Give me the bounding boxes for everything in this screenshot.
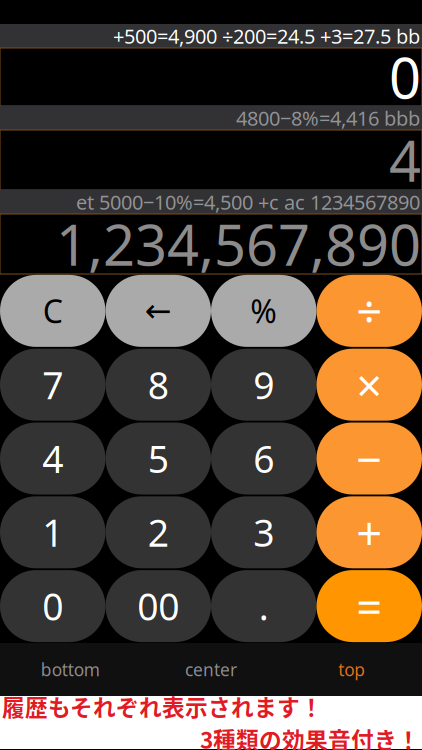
staticText: top bbox=[338, 658, 365, 681]
staticText: 0 bbox=[42, 581, 63, 631]
button[interactable]: 3 bbox=[211, 495, 316, 569]
button[interactable]: − bbox=[316, 422, 422, 495]
button[interactable]: ← bbox=[105, 274, 211, 348]
button[interactable]: % bbox=[211, 274, 316, 348]
button[interactable]: . bbox=[211, 569, 316, 643]
staticText: × bbox=[356, 354, 382, 415]
button[interactable]: 2 bbox=[105, 495, 211, 569]
staticText: 0 bbox=[389, 39, 421, 115]
staticText: bottom bbox=[41, 658, 100, 681]
staticText: = bbox=[356, 575, 382, 637]
staticText: 3 bbox=[253, 507, 274, 558]
staticText: 1 bbox=[42, 507, 63, 558]
staticText: 9 bbox=[253, 359, 274, 410]
button[interactable]: = bbox=[316, 569, 422, 643]
staticText: 8 bbox=[148, 359, 169, 410]
staticText: 履歴もそれぞれ表示されます！ bbox=[2, 690, 323, 722]
button[interactable]: top bbox=[281, 643, 422, 696]
button[interactable]: 0 bbox=[0, 569, 105, 643]
button[interactable]: ÷ bbox=[316, 274, 422, 348]
staticText: − bbox=[356, 428, 382, 489]
button[interactable]: 1 bbox=[0, 495, 105, 569]
button[interactable]: 7 bbox=[0, 348, 105, 422]
button[interactable]: 9 bbox=[211, 348, 316, 422]
staticText: 3種類の効果音付き！ bbox=[200, 722, 420, 750]
staticText: 6 bbox=[253, 433, 274, 484]
button[interactable]: 8 bbox=[105, 348, 211, 422]
button[interactable]: 5 bbox=[105, 422, 211, 495]
staticText: ← bbox=[145, 292, 172, 329]
button[interactable]: 6 bbox=[211, 422, 316, 495]
staticText: 4 bbox=[42, 433, 63, 484]
staticText: . bbox=[259, 581, 269, 631]
staticText: 00 bbox=[137, 581, 179, 631]
staticText: 7 bbox=[42, 359, 63, 410]
staticText: center bbox=[185, 658, 237, 681]
button[interactable]: bottom bbox=[0, 643, 141, 696]
staticText: + bbox=[356, 501, 382, 563]
button[interactable]: + bbox=[316, 495, 422, 569]
button[interactable]: 00 bbox=[105, 569, 211, 643]
staticText: 1,234,567,890 bbox=[56, 206, 421, 282]
staticText: 2 bbox=[148, 507, 169, 558]
button[interactable]: center bbox=[141, 643, 281, 696]
button[interactable]: C bbox=[0, 274, 105, 348]
staticText: % bbox=[250, 289, 277, 333]
staticText: ÷ bbox=[356, 280, 382, 342]
staticText: 4800−8%=4,416 bbb bbox=[236, 104, 420, 132]
staticText: 5 bbox=[148, 433, 169, 484]
staticText: 4 bbox=[389, 122, 421, 198]
staticText: et 5000−10%=4,500 +c ac 1234567890 bbox=[76, 188, 420, 216]
button[interactable]: × bbox=[316, 348, 422, 422]
button[interactable]: 4 bbox=[0, 422, 105, 495]
staticText: C bbox=[43, 289, 63, 333]
staticText: +500=4,900 ÷200=24.5 +3=27.5 bb bbox=[113, 22, 420, 50]
